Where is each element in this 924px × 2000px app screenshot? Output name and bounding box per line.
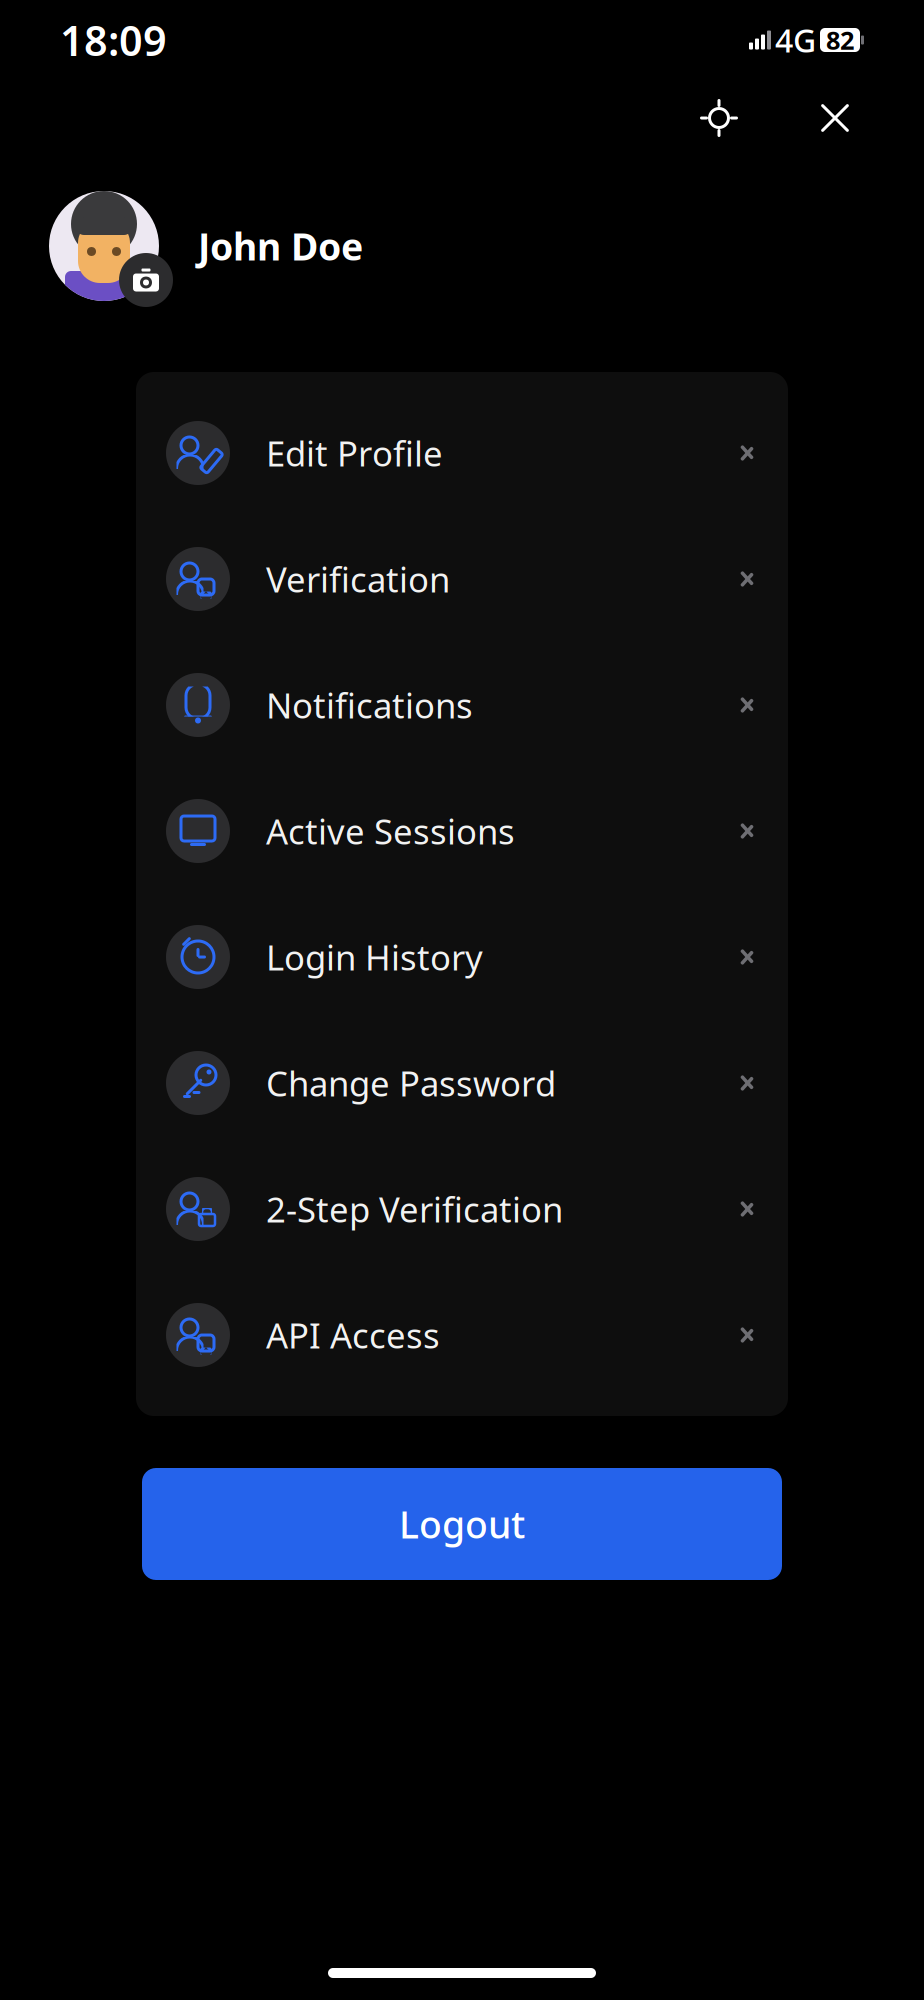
staticText: API Access [266, 1312, 440, 1358]
staticText: John Doe [198, 221, 363, 271]
button[interactable]: Logout [142, 1468, 782, 1580]
button[interactable]: Notifications [136, 642, 788, 768]
staticText: 2-Step Verification [266, 1186, 563, 1232]
button[interactable]: API Access [136, 1272, 788, 1398]
button[interactable]: John Doe [0, 156, 924, 316]
button[interactable]: Change Password [136, 1020, 788, 1146]
staticText: Logout [399, 1499, 525, 1549]
staticText: Verification [266, 556, 450, 602]
staticText: Change Password [266, 1060, 556, 1106]
staticText: 18:09 [60, 13, 167, 67]
staticText: 4G [775, 19, 816, 61]
staticText: Login History [266, 934, 483, 980]
button[interactable]: Edit Profile [136, 390, 788, 516]
staticText: Active Sessions [266, 808, 515, 854]
button[interactable]: Login History [136, 894, 788, 1020]
button[interactable]: Close [804, 87, 866, 149]
staticText: Notifications [266, 682, 473, 728]
staticText: Edit Profile [266, 430, 443, 476]
button[interactable]: Active Sessions [136, 768, 788, 894]
button[interactable]: Brightness [688, 87, 750, 149]
button[interactable]: 2-Step Verification [136, 1146, 788, 1272]
button[interactable]: Verification [136, 516, 788, 642]
staticText: 82 [826, 23, 854, 57]
